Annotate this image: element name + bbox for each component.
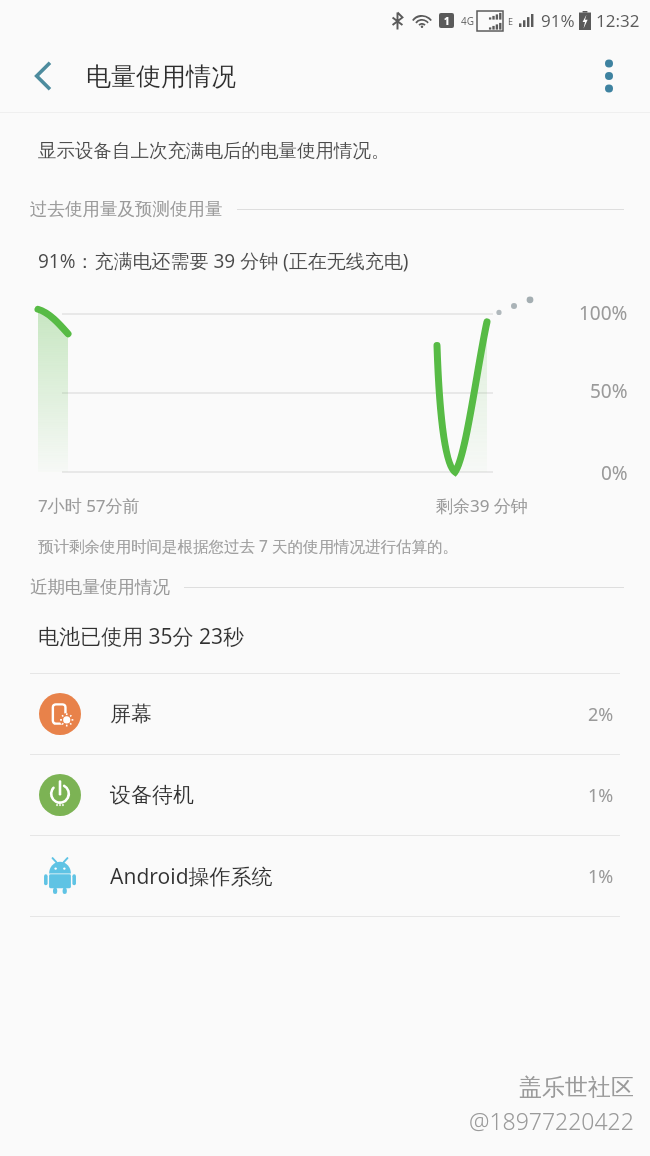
staticText: 显示设备自上次充满电后的电量使用情况。 xyxy=(38,139,390,162)
staticText: 屏幕 xyxy=(110,701,588,727)
staticText: @18977220422 xyxy=(469,1105,634,1136)
button[interactable]: Back xyxy=(16,49,70,103)
staticText: 12:32 xyxy=(596,9,640,32)
button[interactable]: More options xyxy=(582,49,636,103)
staticText: 4G xyxy=(461,14,474,28)
staticText: 100% xyxy=(579,300,628,326)
staticText: 电量使用情况 xyxy=(86,61,236,92)
staticText: 过去使用量及预测使用量 xyxy=(30,198,223,220)
staticText: 盖乐世社区 xyxy=(519,1073,634,1102)
staticText: 7小时 57分前 xyxy=(38,494,140,517)
staticText: 1% xyxy=(588,783,614,808)
staticText: 2% xyxy=(588,702,614,727)
staticText: 1% xyxy=(588,864,614,889)
staticText: 50% xyxy=(590,378,628,404)
staticText: 预计剩余使用时间是根据您过去 7 天的使用情况进行估算的。 xyxy=(38,535,458,556)
staticText: 91%：充满电还需要 39 分钟 (正在无线充电) xyxy=(38,248,409,274)
staticText: 电池已使用 35分 23秒 xyxy=(38,622,244,651)
staticText: 剩余39 分钟 xyxy=(436,494,528,517)
staticText: 91% xyxy=(541,9,575,32)
button[interactable]: Android操作系统 xyxy=(0,836,650,916)
staticText: 设备待机 xyxy=(110,782,588,808)
staticText: Android操作系统 xyxy=(110,862,588,891)
staticText: 近期电量使用情况 xyxy=(30,576,170,598)
staticText: 1 xyxy=(444,14,450,28)
button[interactable]: 屏幕 xyxy=(0,674,650,754)
staticText: 0% xyxy=(601,460,628,486)
button[interactable]: 设备待机 xyxy=(0,755,650,835)
staticText: E xyxy=(508,15,514,27)
